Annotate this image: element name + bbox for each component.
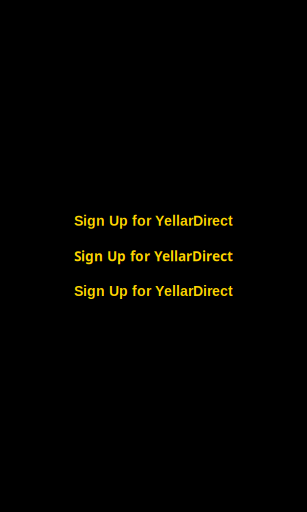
staticText: Sign Up for YellarDirect bbox=[74, 283, 233, 299]
staticText: Sign Up for YellarDirect bbox=[74, 213, 233, 229]
staticText: Sign Up for YellarDirect bbox=[74, 247, 233, 265]
